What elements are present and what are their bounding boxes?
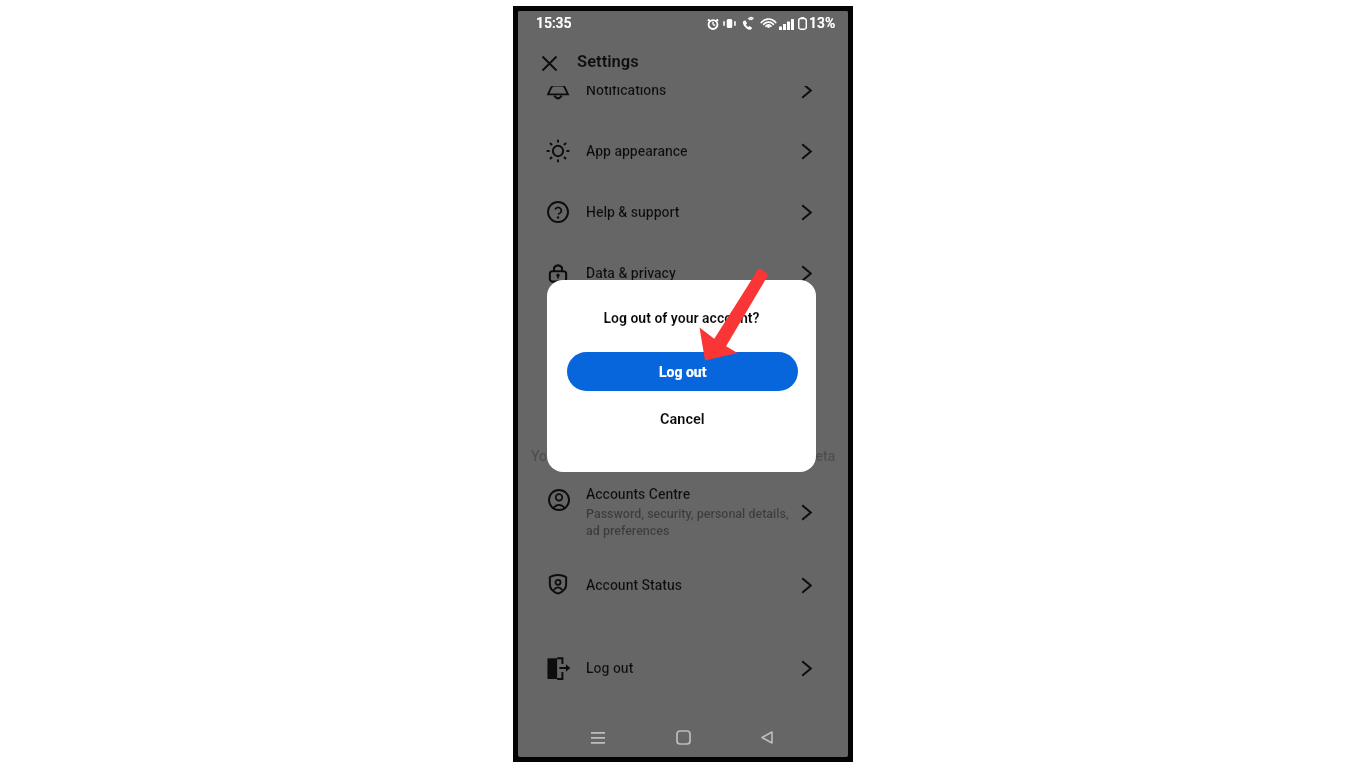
staticText: Log out of your account? bbox=[547, 310, 816, 326]
staticText: About bbox=[586, 387, 801, 403]
staticText: Log out bbox=[659, 364, 707, 380]
staticText: Help & support bbox=[586, 204, 801, 220]
staticText: Supervision bbox=[586, 326, 801, 342]
button[interactable]: Cancel bbox=[567, 397, 798, 441]
button[interactable]: Home bbox=[669, 723, 697, 751]
button[interactable]: Help & support bbox=[518, 187, 848, 237]
staticText: Log out bbox=[586, 660, 801, 676]
button[interactable]: About bbox=[518, 370, 848, 420]
button[interactable]: Recent apps bbox=[584, 723, 612, 751]
button[interactable]: Data & privacy bbox=[518, 248, 848, 298]
staticText: Account Status bbox=[586, 577, 801, 593]
staticText: 13% bbox=[809, 15, 836, 31]
button[interactable]: Back bbox=[753, 723, 781, 751]
button[interactable]: Accounts Centre bbox=[518, 478, 848, 546]
button[interactable]: App appearance bbox=[518, 126, 848, 176]
staticText: Data & privacy bbox=[586, 265, 801, 281]
staticText: 15:35 bbox=[536, 15, 572, 31]
button[interactable]: Close bbox=[536, 50, 562, 76]
staticText: Password, security, personal details, ad… bbox=[586, 506, 789, 538]
button[interactable]: Log out bbox=[567, 352, 798, 391]
staticText: Accounts Centre bbox=[586, 486, 691, 502]
button[interactable]: Notifications bbox=[518, 65, 848, 115]
staticText: App appearance bbox=[586, 143, 801, 159]
button[interactable]: Supervision bbox=[518, 309, 848, 359]
staticText: Notifications bbox=[586, 82, 801, 98]
staticText: Settings bbox=[577, 52, 639, 71]
staticText: You're logged in with your Meta account … bbox=[531, 448, 836, 464]
button[interactable]: Account Status bbox=[518, 560, 848, 610]
staticText: Cancel bbox=[660, 411, 705, 428]
button[interactable]: Log out bbox=[518, 643, 848, 693]
